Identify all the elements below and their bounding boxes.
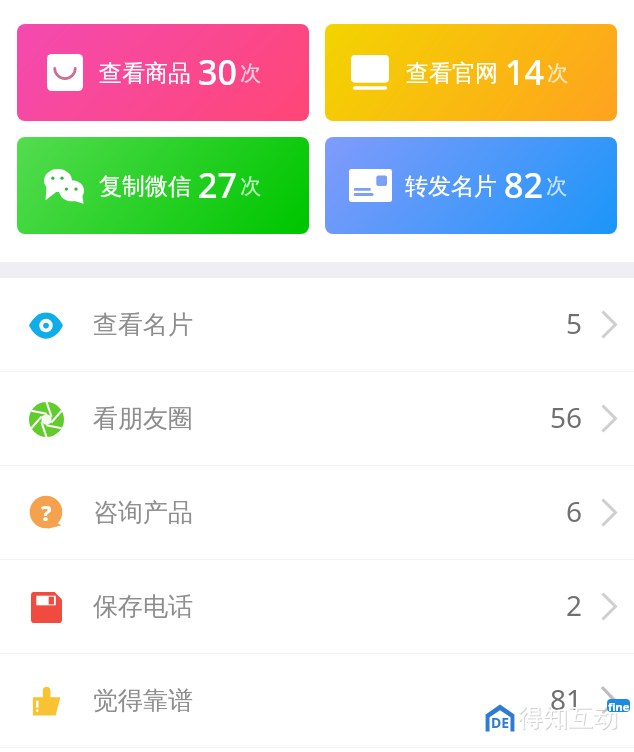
other: 保存电话 <box>31 592 62 623</box>
staticText: 5 <box>566 304 583 342</box>
staticText: 6 <box>566 492 583 530</box>
staticText: 次 <box>240 60 261 86</box>
button[interactable]: 咨询产品 <box>0 466 634 559</box>
other: 查看商品 <box>47 54 83 91</box>
staticText: 56 <box>550 398 583 436</box>
staticText: 觉得靠谱 <box>93 685 193 716</box>
staticText: 次 <box>546 173 567 199</box>
staticText: 81 <box>550 680 583 718</box>
button[interactable]: 查看商品 <box>17 24 309 121</box>
staticText: 82 <box>504 162 543 208</box>
button[interactable]: 转发名片 <box>325 137 617 234</box>
staticText: 查看名片 <box>93 309 193 340</box>
other: 查看官网 <box>351 55 389 90</box>
staticText: ? <box>41 497 52 527</box>
staticText: 复制微信 <box>99 172 191 201</box>
other: 复制微信 <box>44 169 84 203</box>
button[interactable]: 查看官网 <box>325 24 617 121</box>
staticText: 2 <box>566 586 583 624</box>
staticText: 次 <box>240 173 261 199</box>
staticText: 得知互动 <box>519 703 619 734</box>
button[interactable]: 看朋友圈 <box>0 372 634 465</box>
other: 查看名片 <box>29 313 63 338</box>
staticText: 次 <box>547 60 568 86</box>
staticText: 保存电话 <box>93 591 193 622</box>
other: 转发名片 <box>349 169 392 202</box>
button[interactable]: 觉得靠谱 <box>0 654 634 747</box>
staticText: 得知互动 <box>518 702 618 733</box>
staticText: 查看官网 <box>406 59 498 88</box>
button[interactable]: 保存电话 <box>0 560 634 653</box>
other: 觉得靠谱 <box>30 685 62 717</box>
staticText: 30 <box>198 49 237 95</box>
staticText: 查看商品 <box>99 59 191 88</box>
staticText: 14 <box>505 49 544 95</box>
staticText: 转发名片 <box>405 172 497 201</box>
other: 看朋友圈 <box>29 402 64 437</box>
other: 咨询产品 <box>29 496 63 530</box>
staticText: 咨询产品 <box>93 497 193 528</box>
button[interactable]: 查看名片 <box>0 278 634 371</box>
staticText: 看朋友圈 <box>93 403 193 434</box>
staticText: fine <box>608 699 630 712</box>
staticText: DE <box>491 713 510 732</box>
button[interactable]: 复制微信 <box>17 137 309 234</box>
staticText: 27 <box>198 162 237 208</box>
